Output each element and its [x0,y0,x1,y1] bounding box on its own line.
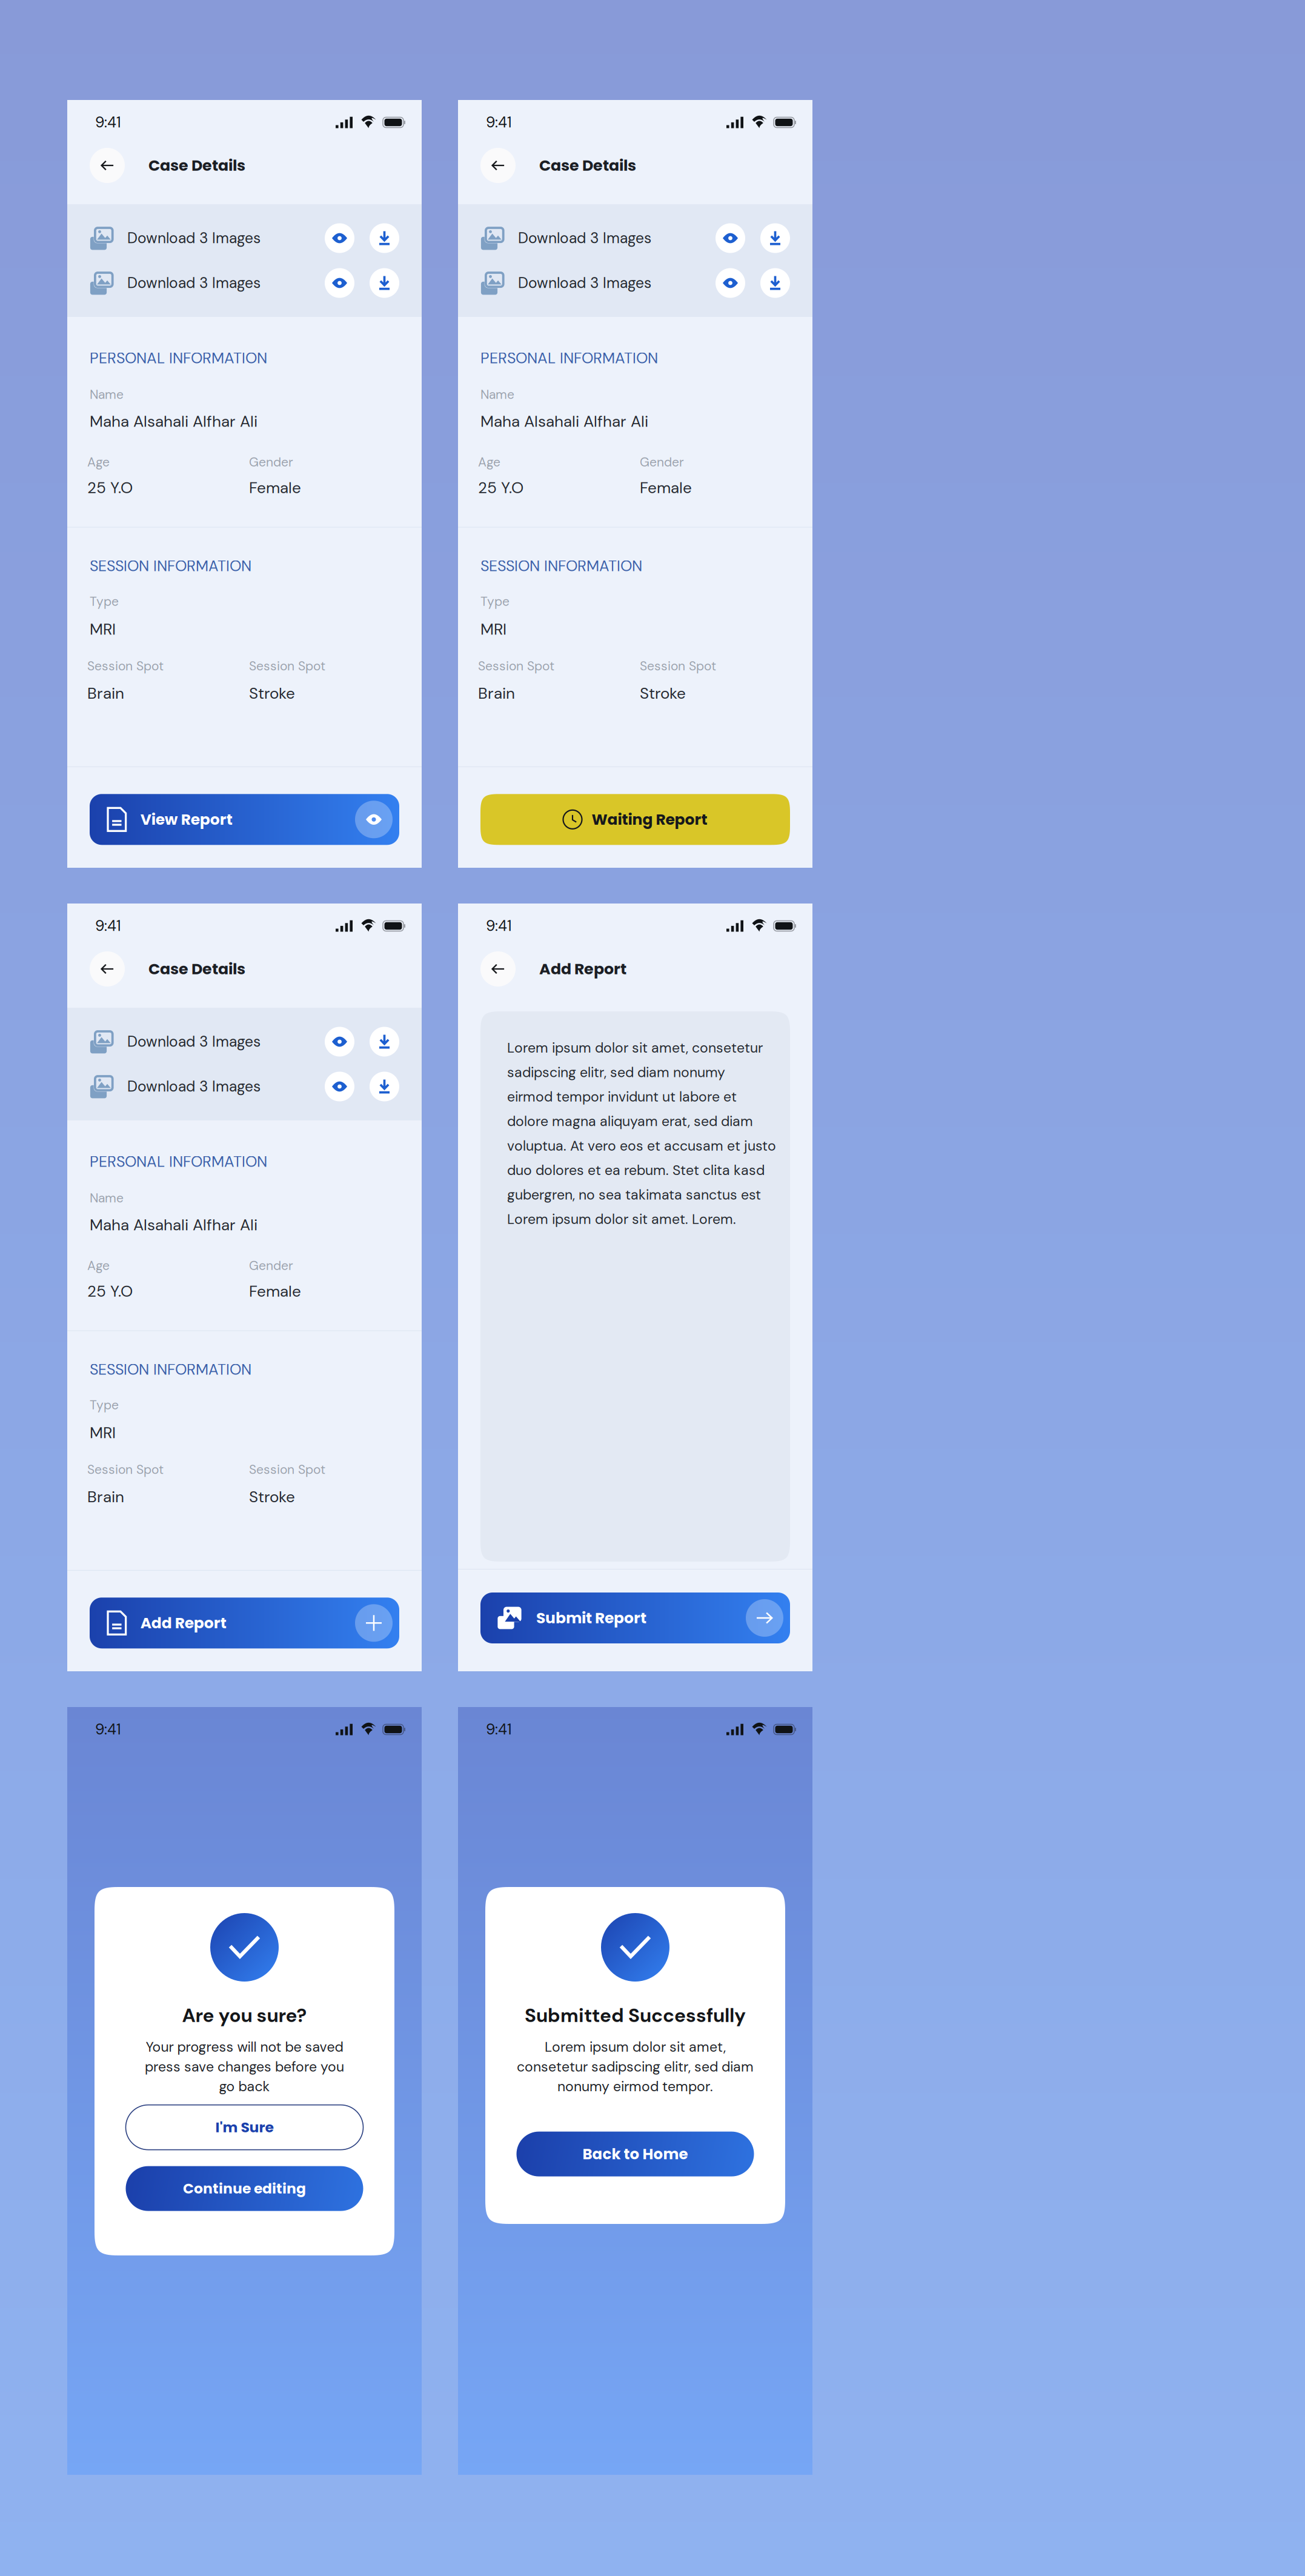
button[interactable]: Add Report [90,1598,399,1648]
staticText: Download 3 Images [127,1077,261,1096]
staticText: 9:41 [95,113,121,132]
button[interactable]: Download images [760,223,790,253]
staticText: Download 3 Images [127,273,261,293]
staticText: duo dolores et ea rebum. Stet clita kasd [507,1161,765,1179]
staticText: Age [478,454,500,470]
button[interactable]: Preview images [325,223,354,253]
staticText: Female [640,478,692,498]
staticText: Maha Alsahali Alfhar Ali [90,411,257,432]
button[interactable]: Back [90,148,125,183]
staticText: Download 3 Images [518,229,651,248]
staticText: consetetur sadipscing elitr, sed diam [517,2058,754,2076]
staticText: Session Spot [249,1461,325,1478]
staticText: Waiting Report [592,809,707,830]
button[interactable]: Preview images [325,1027,354,1057]
staticText: PERSONAL INFORMATION [90,1152,267,1171]
staticText: Stroke [249,1487,295,1507]
button[interactable]: Preview images [716,268,745,298]
staticText: go back [219,2077,270,2096]
staticText: Submit Report [536,1607,646,1629]
staticText: Maha Alsahali Alfhar Ali [90,1215,257,1235]
staticText: Download 3 Images [127,229,261,248]
staticText: Download 3 Images [127,1032,261,1051]
button[interactable]: I'm Sure [126,2105,363,2150]
staticText: Gender [249,454,293,470]
staticText: Gender [249,1257,293,1274]
staticText: Session Spot [87,1461,164,1478]
staticText: Type [90,593,119,610]
staticText: Type [90,1397,119,1413]
staticText: Download 3 Images [518,273,651,293]
button[interactable]: Back [90,951,125,987]
staticText: Your progress will not be saved [146,2038,343,2056]
button[interactable]: Back [480,951,516,987]
staticText: Session Spot [640,658,716,674]
staticText: Stroke [249,683,295,704]
staticText: voluptua. At vero eos et accusam et just… [507,1137,776,1155]
button[interactable]: Download images [370,268,399,298]
staticText: Add Report [140,1612,226,1634]
staticText: 9:41 [486,113,512,132]
staticText: Female [249,478,301,498]
staticText: MRI [90,1423,116,1443]
staticText: Continue editing [183,2179,306,2199]
staticText: 9:41 [95,916,121,936]
staticText: 9:41 [486,916,512,936]
staticText: Session Spot [87,658,164,674]
staticText: Name [90,386,124,403]
button[interactable]: Waiting Report [480,794,790,845]
staticText: Age [87,1257,110,1274]
staticText: Age [87,454,110,470]
staticText: Stroke [640,683,686,704]
button[interactable]: Preview images [325,1072,354,1101]
button[interactable]: Preview images [325,268,354,298]
staticText: gubergren, no sea takimata sanctus est [507,1186,761,1204]
staticText: Case Details [148,958,245,980]
staticText: Female [249,1281,301,1302]
staticText: View Report [140,809,232,830]
button[interactable]: Back [480,148,516,183]
staticText: Name [90,1190,124,1206]
staticText: I'm Sure [215,2117,274,2137]
staticText: Are you sure? [182,2003,307,2028]
staticText: Gender [640,454,684,470]
button[interactable]: View Report [90,794,399,845]
staticText: dolore magna aliquyam erat, sed diam [507,1112,753,1130]
button[interactable]: Download images [370,1027,399,1057]
staticText: 25 Y.O [87,1281,133,1302]
button[interactable]: Download images [370,223,399,253]
staticText: Back to Home [583,2144,688,2164]
staticText: Case Details [148,155,245,176]
button[interactable]: Download images [370,1072,399,1101]
staticText: Name [480,386,514,403]
staticText: PERSONAL INFORMATION [90,348,267,368]
staticText: sadipscing elitr, sed diam nonumy [507,1063,725,1081]
staticText: Brain [478,683,515,704]
staticText: Add Report [539,958,626,980]
button[interactable]: Download images [760,268,790,298]
staticText: Brain [87,683,124,704]
staticText: Case Details [539,155,636,176]
staticText: PERSONAL INFORMATION [480,348,658,368]
staticText: 9:41 [95,1720,121,1739]
staticText: MRI [480,619,506,640]
staticText: MRI [90,619,116,640]
staticText: nonumy eirmod tempor. [557,2077,713,2096]
staticText: Brain [87,1487,124,1507]
staticText: Session Spot [478,658,554,674]
staticText: 9:41 [486,1720,512,1739]
staticText: Session Spot [249,658,325,674]
button[interactable]: Preview images [716,223,745,253]
staticText: Type [480,593,510,610]
staticText: Lorem ipsum dolor sit amet. Lorem. [507,1210,736,1228]
staticText: eirmod tempor invidunt ut labore et [507,1088,737,1106]
staticText: 25 Y.O [87,478,133,498]
staticText: 25 Y.O [478,478,523,498]
staticText: SESSION INFORMATION [90,1360,251,1379]
staticText: Lorem ipsum dolor sit amet, consetetur [507,1039,763,1057]
button[interactable]: Continue editing [126,2166,363,2211]
staticText: SESSION INFORMATION [90,556,251,576]
button[interactable]: Back to Home [516,2132,754,2176]
button[interactable]: Submit Report [480,1593,790,1643]
staticText: Submitted Successfully [525,2003,746,2028]
